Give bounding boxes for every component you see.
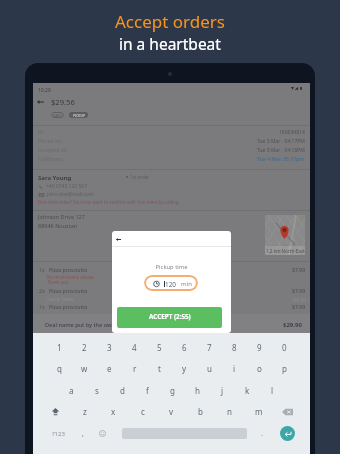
button[interactable]: ?123: [44, 423, 72, 444]
button[interactable]: s: [84, 380, 110, 401]
button[interactable]: t: [147, 358, 172, 379]
button[interactable]: CASH: [51, 112, 64, 118]
staticText: p: [282, 363, 287, 374]
button[interactable]: p: [272, 358, 297, 379]
staticText: Pickup time: [112, 263, 231, 271]
button[interactable]: d: [110, 380, 135, 401]
button[interactable]: Enter: [273, 423, 302, 444]
button[interactable]: 1: [46, 337, 72, 358]
button[interactable]: Back: [114, 235, 123, 244]
staticText: ACCEPT (2:55): [149, 312, 191, 321]
staticText: $29.56: [51, 97, 75, 107]
button[interactable]: y: [172, 358, 197, 379]
staticText: 1: [57, 342, 62, 353]
staticText: Sauce: Sweet: [47, 296, 74, 302]
staticText: 8: [232, 342, 237, 353]
staticText: First time order! You may want to confir…: [38, 199, 180, 205]
staticText: q: [57, 363, 62, 374]
button[interactable]: PICKUP: [69, 112, 88, 118]
staticText: n: [227, 406, 232, 417]
button[interactable]: e: [97, 358, 122, 379]
staticText: Tue 4 Mar, 05:17pm: [257, 156, 305, 163]
button[interactable]: c: [128, 401, 157, 422]
button[interactable]: n: [215, 401, 244, 422]
button[interactable]: a: [58, 380, 84, 401]
button[interactable]: 3: [97, 337, 122, 358]
staticText: .: [261, 429, 263, 439]
button[interactable]: 8: [222, 337, 247, 358]
staticText: h: [195, 385, 200, 396]
button[interactable]: i: [222, 358, 247, 379]
staticText: $7.99: [292, 303, 306, 310]
button[interactable]: h: [185, 380, 210, 401]
button[interactable]: x: [99, 401, 128, 422]
staticText: 2x: [39, 287, 45, 294]
button[interactable]: b: [186, 401, 215, 422]
staticText: 160634814: [279, 129, 305, 136]
staticText: 88946 Noustan: [38, 222, 78, 229]
staticText: ID:: [38, 129, 45, 136]
staticText: m: [255, 406, 263, 417]
button[interactable]: o: [247, 358, 272, 379]
staticText: 1st order: [130, 174, 150, 180]
button[interactable]: k: [235, 380, 260, 401]
button[interactable]: 0: [272, 337, 297, 358]
staticText: Pizza prosciutto: [49, 303, 88, 310]
staticText: d: [120, 385, 125, 396]
staticText: 1x: [39, 303, 45, 310]
staticText: CASH: [53, 113, 62, 118]
button[interactable]: 5: [147, 337, 172, 358]
button[interactable]: u: [197, 358, 222, 379]
staticText: Accepted on: [38, 147, 68, 154]
button[interactable]: 4: [122, 337, 147, 358]
staticText: Pizza prosciutto: [49, 266, 88, 273]
button[interactable]: Back: [34, 95, 47, 108]
staticText: i: [233, 363, 236, 374]
staticText: f: [146, 385, 149, 396]
staticText: Johnson Drive 127: [38, 213, 85, 220]
button[interactable]: Emoji: [91, 423, 113, 444]
button[interactable]: j: [210, 380, 235, 401]
staticText: Fulfillment: [38, 156, 63, 163]
staticText: c: [141, 406, 145, 417]
button[interactable]: Backspace: [273, 401, 302, 422]
staticText: u: [207, 363, 212, 374]
staticText: 10:28: [38, 87, 51, 94]
button[interactable]: f: [135, 380, 160, 401]
button[interactable]: r: [122, 358, 147, 379]
staticText: 120: [165, 280, 176, 289]
button[interactable]: m: [244, 401, 273, 422]
staticText: w: [81, 363, 88, 374]
staticText: 7: [207, 342, 212, 353]
staticText: Pizza prosciutto: [49, 287, 88, 294]
button[interactable]: Period: [251, 423, 272, 444]
staticText: s: [95, 385, 99, 396]
button[interactable]: 7: [197, 337, 222, 358]
button[interactable]: v: [157, 401, 186, 422]
staticText: 6: [182, 342, 187, 353]
button[interactable]: q: [46, 358, 72, 379]
staticText: l: [271, 385, 274, 396]
staticText: $7.99: [292, 266, 306, 273]
staticText: 1.2 km North-East: [266, 248, 305, 254]
button[interactable]: 9: [247, 337, 272, 358]
staticText: e: [107, 363, 112, 374]
staticText: 0: [282, 342, 287, 353]
button[interactable]: Comma: [72, 423, 94, 444]
staticText: +40 0743 123 567: [46, 183, 88, 190]
button[interactable]: [144, 275, 198, 291]
staticText: Thank you: [47, 279, 69, 285]
staticText: 4: [132, 342, 137, 353]
button[interactable]: w: [72, 358, 97, 379]
button[interactable]: g: [160, 380, 185, 401]
staticText: 3: [107, 342, 112, 353]
button[interactable]: 6: [172, 337, 197, 358]
button[interactable]: z: [70, 401, 99, 422]
button[interactable]: ACCEPT (2:55): [117, 307, 222, 328]
button[interactable]: Shift: [41, 401, 70, 422]
button[interactable]: 2: [72, 337, 97, 358]
staticText: $29.90: [283, 321, 302, 329]
staticText: ,: [82, 429, 84, 439]
button[interactable]: l: [260, 380, 285, 401]
